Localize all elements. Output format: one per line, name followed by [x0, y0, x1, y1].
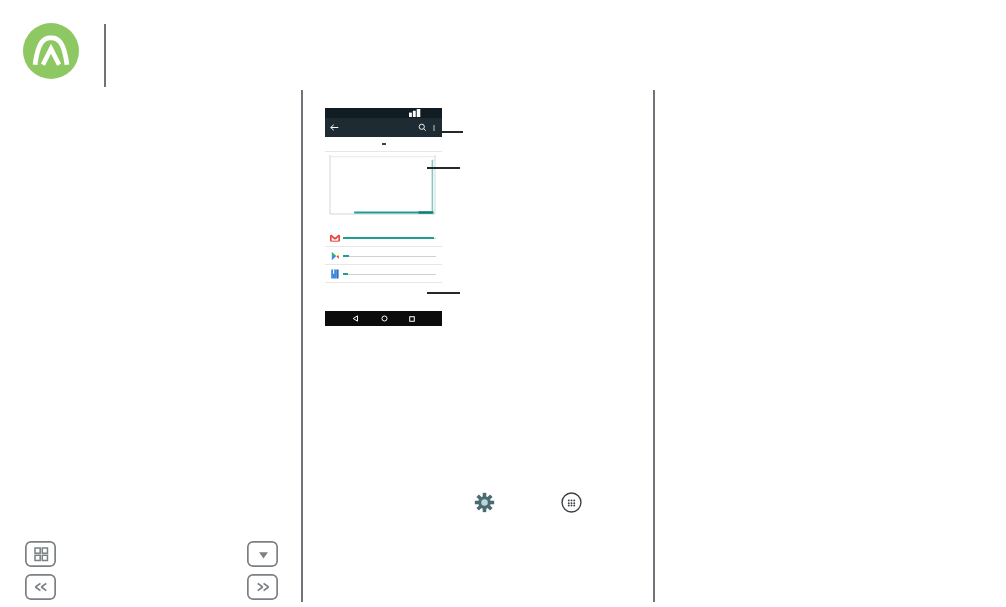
- button[interactable]: [325, 247, 442, 265]
- button[interactable]: Settings: [474, 492, 495, 513]
- button[interactable]: Back: [330, 123, 339, 132]
- button[interactable]: Search: [418, 123, 427, 132]
- button[interactable]: [325, 229, 442, 247]
- button[interactable]: Back: [325, 118, 442, 137]
- button[interactable]: Home: [370, 315, 398, 322]
- button[interactable]: Recents: [398, 316, 426, 322]
- button[interactable]: More options: [430, 124, 438, 132]
- button[interactable]: Contents: [25, 541, 56, 567]
- button[interactable]: Back: [341, 315, 370, 322]
- button[interactable]: Apps: [561, 492, 582, 513]
- button[interactable]: Next page: [247, 574, 278, 600]
- button[interactable]: More: [247, 541, 278, 567]
- button[interactable]: [325, 265, 442, 283]
- button[interactable]: Previous page: [25, 574, 56, 600]
